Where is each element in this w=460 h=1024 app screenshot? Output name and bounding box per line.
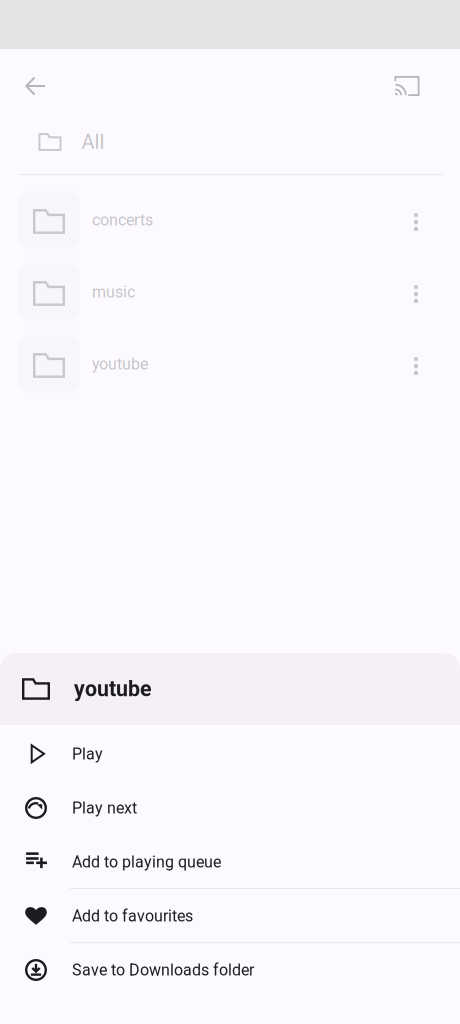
button[interactable]: concerts [0, 184, 460, 256]
staticText: Save to Downloads folder [72, 961, 254, 979]
button[interactable]: music [0, 256, 460, 328]
button[interactable]: All [0, 123, 460, 161]
button[interactable]: Back [12, 62, 60, 110]
staticText: youtube [74, 676, 152, 701]
button[interactable]: Add to favourites [0, 889, 460, 943]
button[interactable]: Cast [383, 62, 431, 110]
staticText: Add to playing queue [72, 853, 221, 871]
button[interactable]: Add to playing queue [0, 835, 460, 889]
staticText: music [92, 283, 135, 301]
staticText: All [81, 130, 104, 154]
staticText: concerts [92, 211, 153, 229]
button[interactable]: Save to Downloads folder [0, 943, 460, 997]
staticText: youtube [92, 355, 148, 373]
staticText: Play next [72, 799, 137, 817]
button[interactable]: Play [0, 727, 460, 781]
staticText: Play [72, 745, 103, 763]
button[interactable]: Play next [0, 781, 460, 835]
staticText: Add to favourites [72, 907, 193, 925]
button[interactable]: youtube [0, 328, 460, 400]
